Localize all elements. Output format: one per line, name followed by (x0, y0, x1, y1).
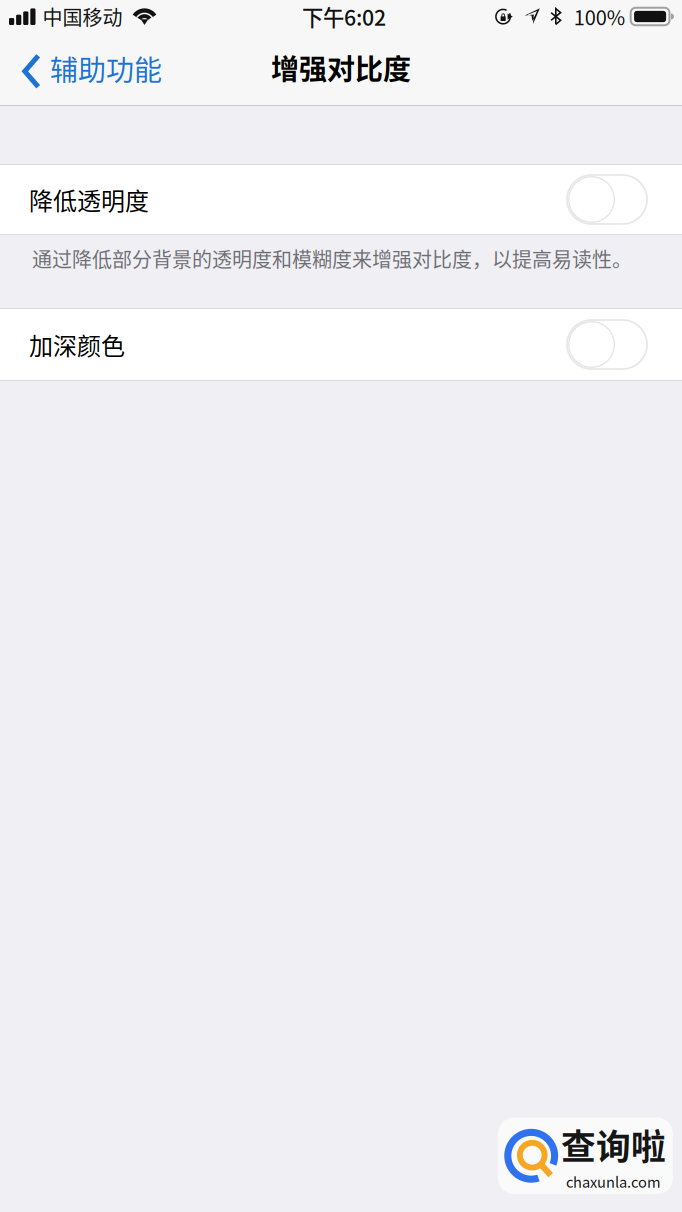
button[interactable]: 降低透明度 (0, 165, 682, 234)
staticText: 辅助功能 (50, 48, 162, 89)
staticText: 加深颜色 (29, 327, 125, 362)
staticText: 增强对比度 (271, 47, 411, 88)
staticText: 降低透明度 (29, 182, 149, 217)
staticText: 下午6:02 (302, 1, 386, 32)
button[interactable]: 辅助功能 (0, 33, 174, 105)
staticText: 通过降低部分背景的透明度和模糊度来增强对比度，以提高易读性。 (32, 244, 632, 273)
staticText: 100% (574, 2, 625, 31)
staticText: chaxunla.com (566, 1171, 661, 1192)
staticText: 中国移动 (42, 2, 122, 31)
staticText: 查询啦 (561, 1120, 666, 1170)
button[interactable]: 加深颜色 (0, 309, 682, 380)
